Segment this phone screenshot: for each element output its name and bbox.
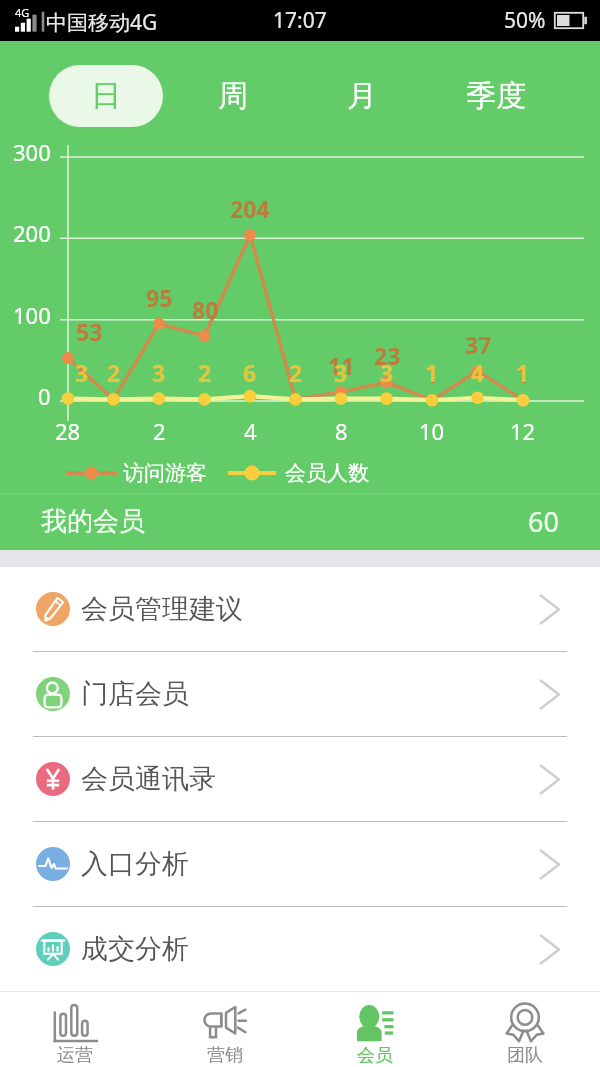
button[interactable]: 团队	[450, 992, 600, 1067]
button[interactable]: 周	[176, 65, 290, 127]
staticText: 团队	[507, 1044, 543, 1067]
staticText: 季度	[466, 77, 526, 115]
staticText: 200	[13, 218, 51, 248]
staticText: 会员管理建议	[81, 592, 243, 626]
staticText: 会员通讯录	[81, 762, 216, 796]
staticText: 80	[192, 294, 219, 325]
staticText: 8	[335, 416, 348, 446]
staticText: 4	[471, 357, 485, 388]
staticText: 50%	[504, 6, 546, 35]
staticText: 300	[13, 137, 51, 167]
staticText: 2	[289, 357, 303, 388]
staticText: 1	[516, 357, 530, 388]
staticText: 周	[218, 77, 248, 115]
staticText: 我的会员	[41, 505, 145, 538]
staticText: 3	[152, 357, 166, 388]
button[interactable]: 入口分析	[0, 822, 600, 906]
staticText: 10	[419, 416, 445, 446]
staticText: 17:07	[273, 6, 327, 35]
staticText: 6	[243, 357, 257, 388]
staticText: 23	[374, 340, 401, 371]
staticText: 中国移动4G	[46, 8, 158, 37]
button[interactable]: 月	[305, 65, 419, 127]
staticText: 53	[76, 316, 103, 347]
staticText: 2	[153, 416, 166, 446]
staticText: 门店会员	[81, 677, 189, 711]
button[interactable]: 日	[49, 65, 163, 127]
staticText: 2	[107, 357, 121, 388]
staticText: 11	[328, 350, 355, 381]
staticText: 3	[75, 357, 89, 388]
button[interactable]: 会员	[300, 992, 450, 1067]
staticText: 4	[244, 416, 257, 446]
staticText: 1	[425, 357, 439, 388]
staticText: 运营	[57, 1044, 93, 1067]
staticText: 95	[146, 282, 173, 313]
button[interactable]: 季度	[439, 65, 553, 127]
staticText: 1	[425, 358, 439, 389]
staticText: 12	[510, 416, 536, 446]
button[interactable]: 门店会员	[0, 652, 600, 736]
staticText: 60	[528, 503, 559, 540]
button[interactable]: 会员管理建议	[0, 567, 600, 651]
button[interactable]: 成交分析	[0, 907, 600, 991]
button[interactable]: 运营	[0, 992, 150, 1067]
staticText: 2	[289, 357, 303, 388]
staticText: 2	[107, 357, 121, 388]
button[interactable]: 我的会员	[0, 493, 600, 550]
button[interactable]: 会员通讯录	[0, 737, 600, 821]
staticText: 3	[380, 357, 394, 388]
staticText: 1	[516, 358, 530, 389]
staticText: 会员	[357, 1044, 393, 1067]
staticText: 204	[230, 193, 270, 224]
staticText: 日	[91, 77, 121, 115]
other: Battery 50 percent	[554, 12, 587, 29]
staticText: 会员人数	[285, 460, 369, 486]
staticText: 入口分析	[81, 847, 189, 881]
staticText: 37	[465, 329, 492, 360]
staticText: 月	[347, 77, 377, 115]
staticText: 0	[38, 381, 51, 411]
staticText: 2	[198, 357, 212, 388]
staticText: 100	[13, 300, 51, 330]
staticText: 营销	[207, 1044, 243, 1067]
staticText: 3	[334, 357, 348, 388]
button[interactable]: 营销	[150, 992, 300, 1067]
staticText: 28	[55, 416, 81, 446]
staticText: 成交分析	[81, 932, 189, 966]
staticText: 访问游客	[123, 460, 207, 486]
staticText: 4G	[15, 5, 30, 20]
